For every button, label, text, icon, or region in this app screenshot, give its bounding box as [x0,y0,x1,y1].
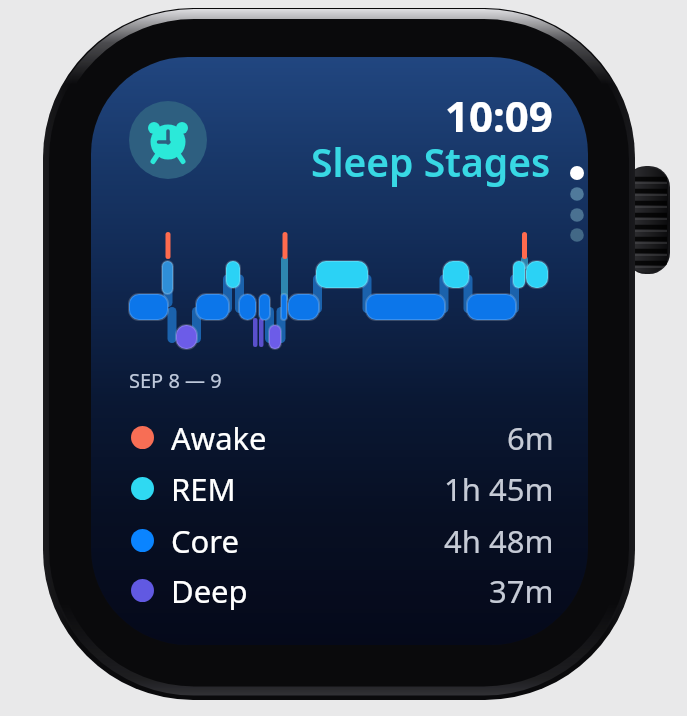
staticText: REM [171,468,236,510]
staticText: Sleep Stages [311,135,551,188]
button[interactable]: Awake [131,412,554,463]
staticText: 4h 48m [444,520,554,562]
staticText: 1h 45m [444,468,554,510]
staticText: Core [171,520,240,562]
staticText: SEP 8 — 9 [129,367,222,394]
staticText: 10:09 [445,87,553,144]
staticText: Deep [171,570,248,612]
button[interactable]: Core [131,515,554,566]
staticText: 6m [507,417,554,459]
button[interactable]: REM [131,463,554,514]
staticText: Awake [171,417,267,459]
button[interactable] [129,101,207,179]
staticText: 37m [489,570,554,612]
button[interactable]: Deep [131,565,554,616]
